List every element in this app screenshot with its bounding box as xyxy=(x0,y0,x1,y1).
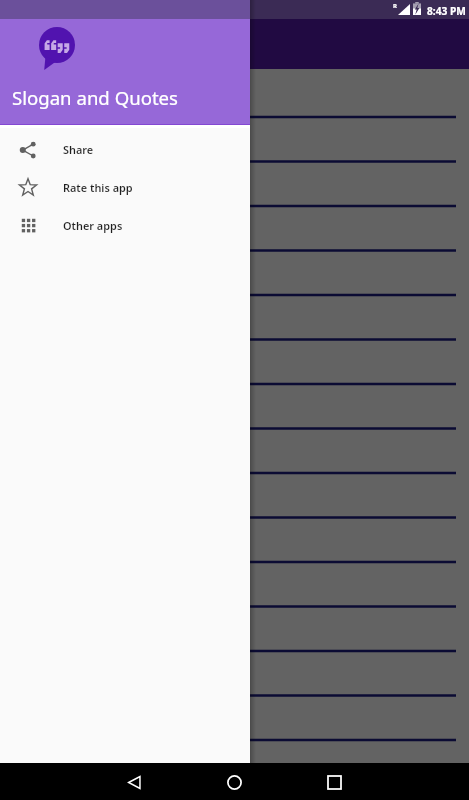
button[interactable]: Other apps xyxy=(0,206,250,244)
button[interactable]: Home xyxy=(216,764,252,800)
button[interactable]: Back xyxy=(116,764,152,800)
staticText: Slogan and Quotes xyxy=(12,85,179,110)
staticText: R xyxy=(393,2,397,10)
staticText: Share xyxy=(63,142,94,157)
button[interactable]: Rate this app xyxy=(0,168,250,206)
staticText: 8:43 PM xyxy=(427,4,466,18)
button[interactable]: Recents xyxy=(316,764,352,800)
staticText: Other apps xyxy=(63,218,123,233)
staticText: Rate this app xyxy=(63,180,133,195)
button[interactable]: Share xyxy=(0,130,250,168)
button[interactable]: Close navigation drawer xyxy=(250,0,469,800)
